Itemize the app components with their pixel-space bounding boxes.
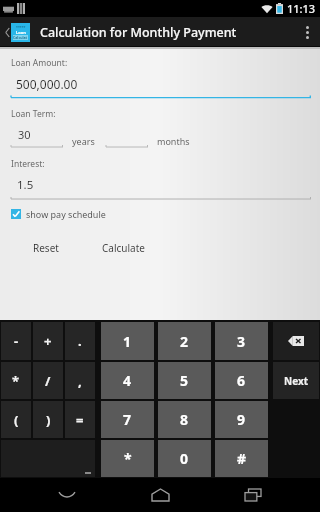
button[interactable]: 8 [158, 401, 211, 438]
button[interactable]: 1.5 [11, 177, 311, 200]
staticText: + [44, 332, 52, 350]
staticText: years [72, 135, 95, 147]
button[interactable]: 9 [215, 401, 268, 438]
button[interactable]: * [1, 362, 31, 399]
staticText: * [124, 449, 132, 468]
button[interactable]: - [1, 322, 31, 360]
button[interactable]: Next [273, 362, 319, 399]
button[interactable]: Delete [273, 322, 319, 360]
staticText: 5 [180, 371, 189, 390]
button[interactable]: # [215, 440, 268, 477]
staticText: - [14, 332, 19, 350]
button[interactable]: Recent apps [227, 478, 279, 512]
button[interactable]: show pay schedule [11, 208, 106, 220]
button[interactable]: Home [134, 478, 186, 512]
button[interactable]: * [101, 440, 154, 477]
button[interactable]: ) [33, 401, 63, 438]
button[interactable]: ( [1, 401, 31, 438]
button[interactable]: Reset [29, 238, 63, 258]
staticText: * [12, 372, 20, 390]
staticText: Loan Amount: [11, 57, 68, 69]
staticText: Next [284, 374, 309, 388]
staticText: 4 [123, 371, 132, 390]
staticText: . [78, 332, 82, 350]
button[interactable]: 0 [158, 440, 211, 477]
button[interactable]: Navigate up [0, 17, 34, 47]
staticText: 6 [237, 371, 246, 390]
staticText: Loan [16, 30, 26, 35]
staticText: 1.5 [17, 177, 34, 193]
staticText: 8 [180, 410, 189, 429]
staticText: # [237, 449, 247, 468]
staticText: 500,000.00 [16, 76, 78, 92]
button[interactable] [106, 131, 148, 148]
button[interactable]: = [65, 401, 95, 438]
button[interactable]: / [33, 362, 63, 399]
staticText: 0 [180, 449, 189, 468]
button[interactable]: , [65, 362, 95, 399]
staticText: 3 [237, 332, 246, 351]
button[interactable]: + [33, 322, 63, 360]
button[interactable]: 4 [101, 362, 154, 399]
button[interactable]: Space [1, 440, 95, 477]
staticText: , [78, 372, 82, 390]
staticText: 1 [123, 332, 132, 351]
staticText: 11:13 [287, 1, 316, 16]
button[interactable]: 7 [101, 401, 154, 438]
staticText: ) [46, 411, 51, 429]
staticText: months [157, 135, 190, 147]
button[interactable]: Back [41, 478, 93, 512]
staticText: Calculation for Monthly Payment [40, 24, 237, 41]
staticText: show pay schedule [26, 208, 106, 220]
staticText: 2 [180, 332, 189, 351]
button[interactable]: 500,000.00 [11, 76, 311, 99]
staticText: Calculator [13, 35, 28, 40]
button[interactable]: More options [294, 17, 320, 47]
button[interactable]: 1 [101, 322, 154, 360]
staticText: / [45, 372, 51, 390]
button[interactable]: 2 [158, 322, 211, 360]
button[interactable]: . [65, 322, 95, 360]
staticText: 30 [18, 127, 31, 142]
button[interactable]: Calculate [98, 238, 149, 258]
staticText: Reset [33, 241, 59, 255]
staticText: ( [14, 411, 19, 429]
button[interactable]: 3 [215, 322, 268, 360]
button[interactable]: 6 [215, 362, 268, 399]
staticText: 7 [123, 410, 132, 429]
button[interactable]: 5 [158, 362, 211, 399]
staticText: ***** [16, 25, 26, 30]
staticText: Calculate [102, 241, 145, 255]
staticText: Loan Term: [11, 108, 56, 120]
staticText: Interest: [11, 158, 45, 170]
staticText: 9 [237, 410, 246, 429]
button[interactable]: 30 [11, 127, 63, 148]
staticText: = [76, 411, 84, 429]
